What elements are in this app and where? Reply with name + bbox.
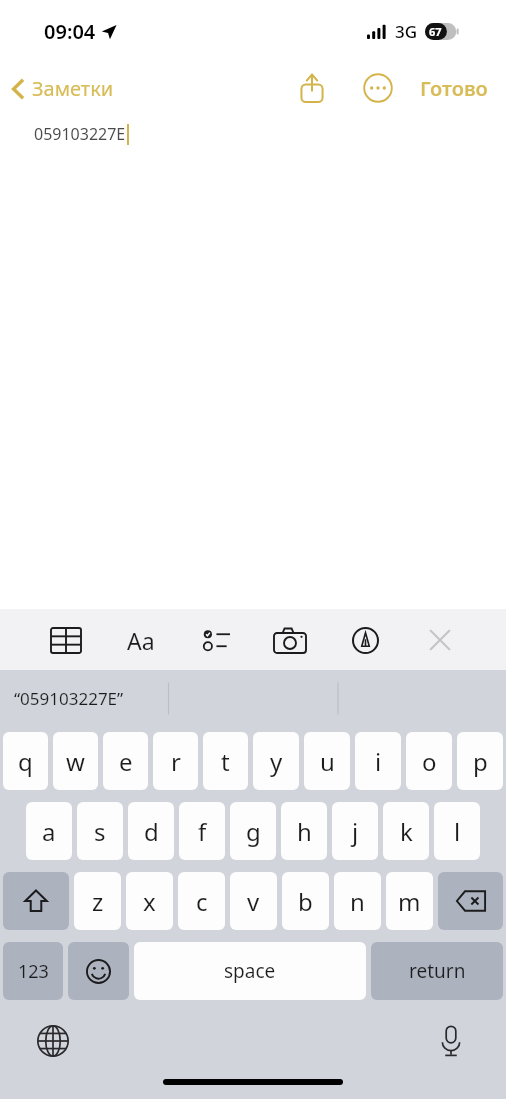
staticText: a — [42, 815, 56, 848]
staticText: b — [298, 885, 313, 918]
button[interactable]: Shift — [3, 872, 69, 930]
button[interactable]: v — [230, 872, 277, 930]
staticText: e — [119, 745, 133, 778]
button[interactable]: “059103227E” — [14, 687, 124, 710]
button[interactable]: Checklist — [194, 615, 238, 665]
staticText: Заметки — [32, 75, 114, 102]
button[interactable]: l — [434, 802, 480, 860]
button[interactable]: d — [128, 802, 174, 860]
button[interactable]: b — [282, 872, 329, 930]
staticText: w — [66, 745, 85, 778]
button[interactable]: Close keyboard — [418, 615, 462, 665]
button[interactable]: Change keyboard language — [30, 1018, 76, 1064]
button[interactable]: t — [203, 732, 248, 790]
button[interactable]: s — [77, 802, 123, 860]
button[interactable]: Share — [290, 66, 334, 110]
button[interactable]: z — [74, 872, 121, 930]
button[interactable]: h — [281, 802, 327, 860]
staticText: “059103227E” — [14, 687, 124, 710]
staticText: t — [221, 745, 230, 778]
button[interactable]: 123 — [3, 942, 63, 1000]
button[interactable]: Markup — [343, 615, 387, 665]
staticText: return — [409, 958, 466, 984]
staticText: u — [320, 745, 335, 778]
button[interactable]: More options — [358, 68, 398, 108]
staticText: c — [196, 885, 208, 918]
staticText: z — [92, 885, 104, 918]
button[interactable]: Заметки — [8, 71, 118, 106]
staticText: x — [143, 885, 156, 918]
button[interactable]: n — [334, 872, 381, 930]
staticText: k — [400, 815, 413, 848]
button[interactable]: o — [406, 732, 452, 790]
staticText: n — [350, 885, 365, 918]
staticText: m — [398, 885, 421, 918]
button[interactable]: return — [371, 942, 503, 1000]
button[interactable]: y — [253, 732, 299, 790]
staticText: g — [246, 815, 261, 848]
staticText: i — [375, 745, 382, 778]
button[interactable]: q — [3, 732, 48, 790]
button[interactable]: x — [126, 872, 173, 930]
button[interactable]: space — [134, 942, 366, 1000]
staticText: 059103227E — [34, 123, 126, 145]
staticText: l — [454, 815, 461, 848]
button[interactable]: Table — [44, 615, 88, 665]
button[interactable]: j — [332, 802, 378, 860]
staticText: 09:04 — [44, 18, 96, 45]
button[interactable]: f — [179, 802, 225, 860]
button[interactable]: Text format — [119, 615, 163, 665]
staticText: Готово — [420, 75, 488, 102]
button[interactable]: Backspace — [438, 872, 503, 930]
staticText: j — [352, 815, 359, 848]
staticText: p — [473, 745, 488, 778]
button[interactable]: Готово — [416, 69, 492, 108]
staticText: d — [144, 815, 159, 848]
staticText: r — [171, 745, 181, 778]
staticText: 123 — [18, 959, 49, 984]
button[interactable]: m — [386, 872, 433, 930]
staticText: 3G — [395, 20, 418, 43]
button[interactable]: r — [153, 732, 198, 790]
staticText: 67 — [429, 24, 442, 39]
button[interactable]: i — [355, 732, 401, 790]
button[interactable]: u — [304, 732, 350, 790]
staticText: q — [18, 745, 33, 778]
staticText: y — [270, 745, 283, 778]
staticText: f — [198, 815, 207, 848]
staticText: h — [297, 815, 312, 848]
button[interactable]: k — [383, 802, 429, 860]
button[interactable]: e — [103, 732, 148, 790]
button[interactable]: c — [178, 872, 225, 930]
staticText: s — [94, 815, 106, 848]
button[interactable]: a — [26, 802, 72, 860]
staticText: o — [422, 745, 437, 778]
button[interactable]: Dictation — [428, 1018, 474, 1064]
staticText: Aa — [127, 625, 155, 656]
button[interactable]: w — [53, 732, 98, 790]
button[interactable]: g — [230, 802, 276, 860]
button[interactable]: Camera — [268, 615, 312, 665]
button[interactable]: Emoji — [68, 942, 129, 1000]
staticText: v — [247, 885, 260, 918]
button[interactable]: p — [457, 732, 503, 790]
staticText: space — [224, 958, 276, 984]
